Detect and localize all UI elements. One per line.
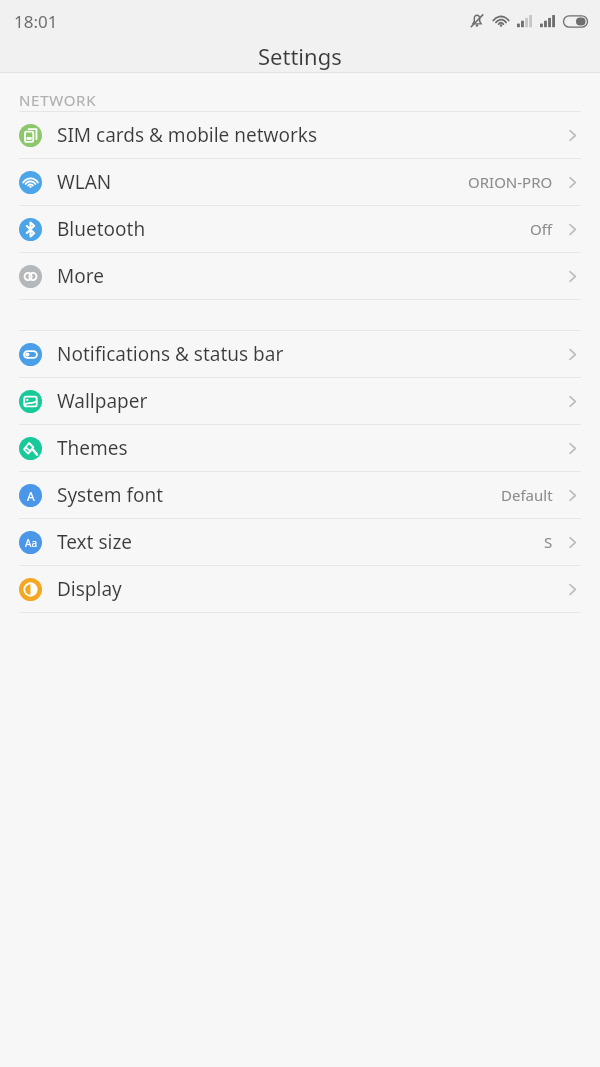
button[interactable]: Wallpaper — [0, 378, 600, 424]
staticText: Display — [57, 576, 563, 602]
staticText: SIM cards & mobile networks — [57, 122, 563, 148]
staticText: Off — [530, 219, 553, 239]
staticText: Wallpaper — [57, 388, 563, 414]
button[interactable]: Themes — [0, 425, 600, 471]
button[interactable]: A — [0, 472, 600, 518]
button[interactable]: More — [0, 253, 600, 299]
staticText: ORION-PRO — [468, 172, 553, 192]
button[interactable]: Aa — [0, 519, 600, 565]
button[interactable]: SIM cards & mobile networks — [0, 112, 600, 158]
staticText: System font — [57, 482, 501, 508]
staticText: Bluetooth — [57, 216, 530, 242]
button[interactable]: Display — [0, 566, 600, 612]
staticText: Settings — [258, 41, 342, 71]
staticText: Default — [501, 485, 553, 505]
staticText: S — [544, 532, 553, 552]
button[interactable]: Bluetooth — [0, 206, 600, 252]
staticText: Notifications & status bar — [57, 341, 563, 367]
staticText: 18:01 — [14, 10, 58, 33]
staticText: Themes — [57, 435, 563, 461]
staticText: WLAN — [57, 169, 468, 195]
button[interactable]: WLAN — [0, 159, 600, 205]
staticText: Text size — [57, 529, 544, 555]
button[interactable]: Notifications & status bar — [0, 331, 600, 377]
staticText: Aa — [25, 536, 37, 550]
staticText: NETWORK — [19, 90, 97, 110]
staticText: More — [57, 263, 563, 289]
staticText: A — [27, 488, 35, 504]
